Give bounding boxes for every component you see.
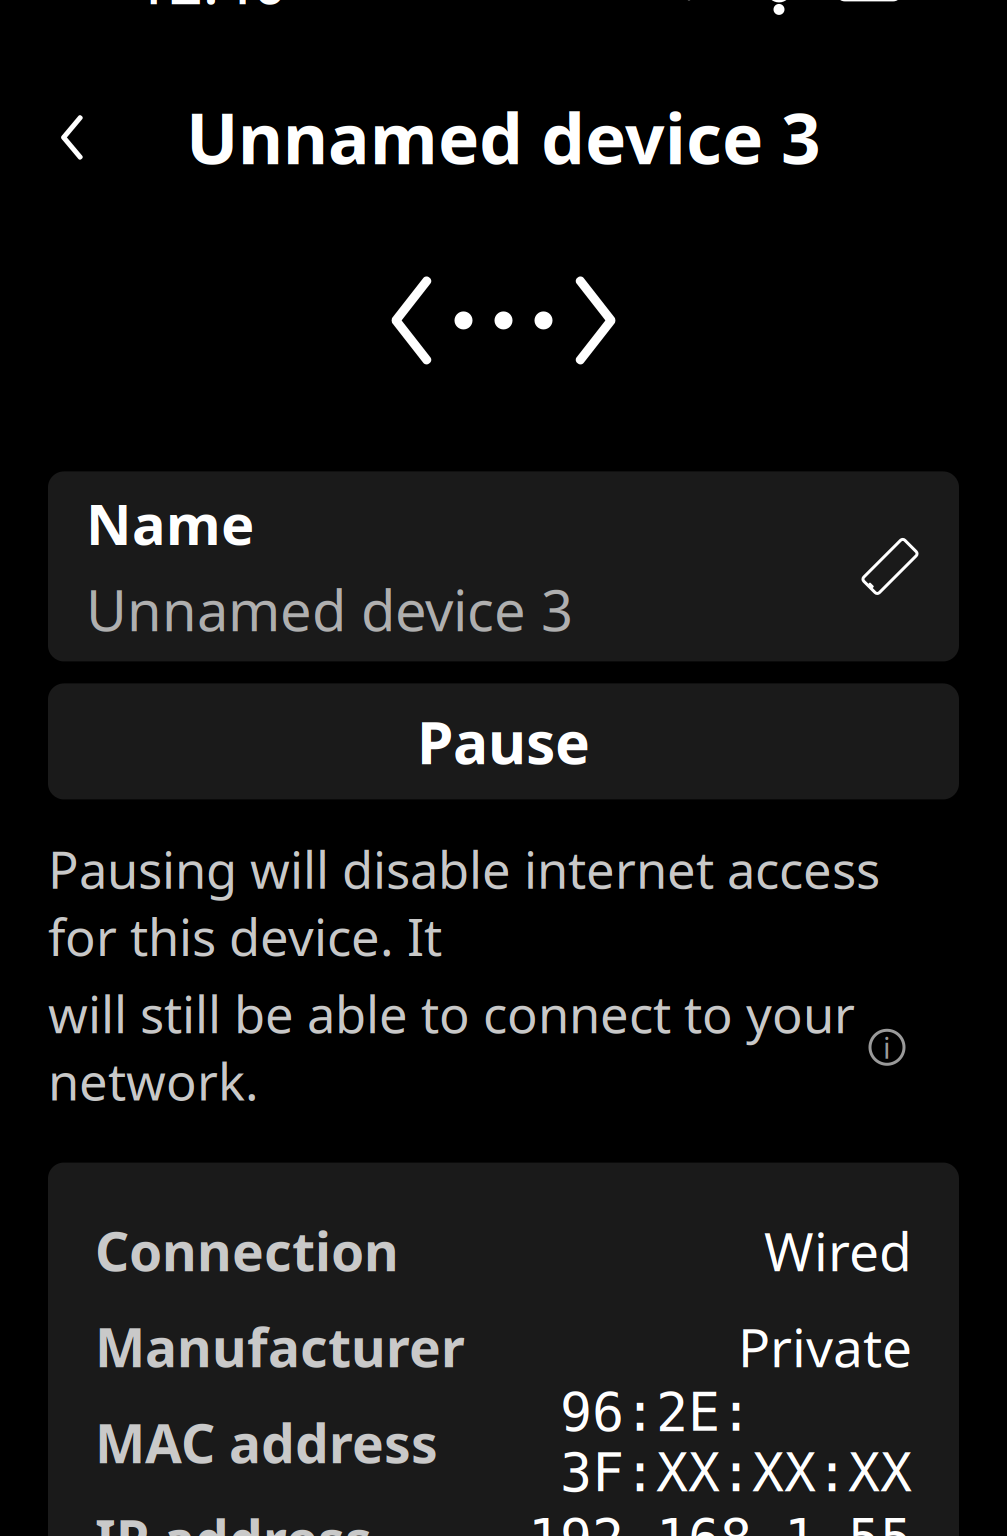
button[interactable]: Back — [24, 89, 120, 185]
staticText: MAC address — [95, 1407, 438, 1478]
button[interactable]: More information — [869, 1029, 905, 1065]
staticText: Private — [738, 1311, 912, 1382]
staticText: will still be able to connect to your ne… — [48, 980, 855, 1115]
staticText: 89 — [846, 0, 892, 8]
staticText: 192.168.1.55 — [528, 1508, 912, 1536]
staticText: Unnamed device 3 — [86, 572, 573, 647]
staticText: 96:2E:3F:XX:XX:XX — [560, 1382, 912, 1503]
staticText: Wired — [764, 1215, 912, 1286]
button[interactable]: Pause — [48, 683, 959, 799]
staticText: Name — [86, 486, 254, 560]
staticText: 12:40 — [135, 0, 287, 20]
staticText: i — [883, 1028, 891, 1067]
staticText: Pausing will disable internet access for… — [48, 835, 880, 970]
staticText: Pause — [417, 702, 590, 780]
staticText: Manufacturer — [95, 1311, 465, 1382]
button[interactable]: Name — [48, 471, 959, 661]
staticText: Connection — [95, 1215, 399, 1286]
staticText: IP address — [95, 1503, 372, 1536]
staticText: Unnamed device 3 — [186, 91, 821, 183]
